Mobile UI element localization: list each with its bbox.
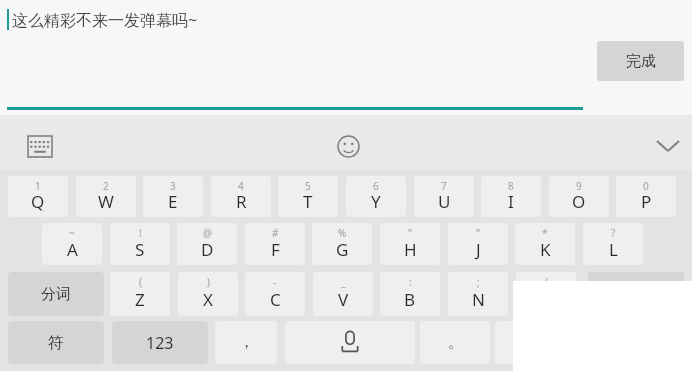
staticText: /: [544, 275, 548, 289]
staticText: 123: [146, 332, 174, 354]
staticText: 3: [170, 179, 176, 193]
staticText: D: [201, 238, 214, 261]
button[interactable]: Voice input: [285, 321, 415, 364]
staticText: ~: [69, 226, 75, 240]
button[interactable]: 分词: [8, 272, 104, 316]
button[interactable]: 9: [549, 176, 609, 217]
button[interactable]: ，: [215, 321, 277, 364]
button[interactable]: Enter: [495, 321, 565, 364]
button[interactable]: 符: [8, 321, 104, 364]
staticText: ): [207, 275, 210, 289]
staticText: 符: [48, 333, 64, 353]
button[interactable]: 这么精彩不来一发弹幕吗~: [0, 0, 692, 115]
button[interactable]: ;: [448, 272, 508, 316]
staticText: (: [139, 275, 142, 289]
button[interactable]: /: [516, 272, 576, 316]
staticText: 9: [576, 179, 582, 193]
staticText: A: [67, 238, 78, 261]
staticText: #: [272, 226, 279, 240]
staticText: H: [404, 238, 417, 261]
staticText: *: [542, 226, 548, 240]
button[interactable]: _: [313, 272, 373, 316]
staticText: 。: [448, 333, 463, 352]
staticText: B: [404, 288, 416, 311]
staticText: U: [438, 190, 451, 213]
staticText: 4: [238, 179, 244, 193]
button[interactable]: ?: [583, 223, 643, 265]
staticText: 8: [508, 179, 514, 193]
staticText: E: [168, 190, 178, 213]
staticText: T: [303, 190, 313, 213]
button[interactable]: ": [380, 223, 440, 265]
staticText: N: [472, 288, 485, 311]
staticText: X: [203, 288, 213, 311]
staticText: O: [572, 190, 586, 213]
staticText: Y: [371, 190, 381, 213]
staticText: G: [336, 238, 349, 261]
staticText: Q: [31, 190, 45, 213]
button[interactable]: 。: [420, 321, 490, 364]
button[interactable]: ~: [42, 223, 102, 265]
staticText: ?: [611, 226, 616, 240]
button[interactable]: (: [110, 272, 170, 316]
button[interactable]: 3: [143, 176, 203, 217]
staticText: C: [270, 288, 281, 311]
staticText: _: [341, 275, 346, 289]
button[interactable]: :: [380, 272, 440, 316]
staticText: ，: [239, 333, 254, 352]
button[interactable]: 0: [616, 176, 676, 217]
button[interactable]: 1: [8, 176, 68, 217]
staticText: J: [476, 238, 481, 261]
button[interactable]: ": [448, 223, 508, 265]
staticText: F: [271, 238, 280, 261]
button[interactable]: 完成: [597, 41, 684, 81]
staticText: ": [408, 226, 413, 240]
staticText: K: [540, 238, 551, 261]
button[interactable]: Switch keyboard: [22, 131, 58, 161]
staticText: R: [236, 190, 247, 213]
button[interactable]: Emoji: [330, 131, 366, 161]
staticText: :: [409, 275, 412, 289]
staticText: 7: [441, 179, 447, 193]
button[interactable]: @: [177, 223, 237, 265]
staticText: ;: [477, 275, 480, 289]
staticText: 分词: [41, 285, 71, 304]
button[interactable]: 4: [211, 176, 271, 217]
button[interactable]: -: [245, 272, 305, 316]
staticText: ": [476, 226, 481, 240]
staticText: 完成: [626, 52, 656, 71]
staticText: 5: [305, 179, 311, 193]
staticText: 2: [103, 179, 109, 193]
staticText: W: [98, 190, 114, 213]
staticText: L: [609, 238, 618, 261]
staticText: Z: [135, 288, 145, 311]
button[interactable]: !: [110, 223, 170, 265]
staticText: 6: [373, 179, 379, 193]
staticText: %: [338, 226, 347, 240]
button[interactable]: Backspace: [588, 272, 684, 316]
button[interactable]: Hide keyboard: [650, 131, 686, 161]
button[interactable]: 6: [346, 176, 406, 217]
button[interactable]: *: [515, 223, 575, 265]
button[interactable]: ): [178, 272, 238, 316]
button[interactable]: 5: [278, 176, 338, 217]
button[interactable]: 7: [414, 176, 474, 217]
staticText: 这么精彩不来一发弹幕吗~: [12, 9, 198, 31]
staticText: S: [135, 238, 145, 261]
staticText: @: [203, 226, 212, 240]
staticText: !: [139, 226, 142, 240]
staticText: 0: [643, 179, 649, 193]
button[interactable]: 2: [76, 176, 136, 217]
staticText: 1: [35, 179, 41, 193]
staticText: P: [641, 190, 652, 213]
button[interactable]: 123: [112, 321, 208, 364]
button[interactable]: 8: [481, 176, 541, 217]
button[interactable]: #: [245, 223, 305, 265]
staticText: -: [273, 275, 277, 289]
staticText: I: [508, 190, 514, 213]
button[interactable]: %: [312, 223, 372, 265]
staticText: V: [338, 288, 349, 311]
